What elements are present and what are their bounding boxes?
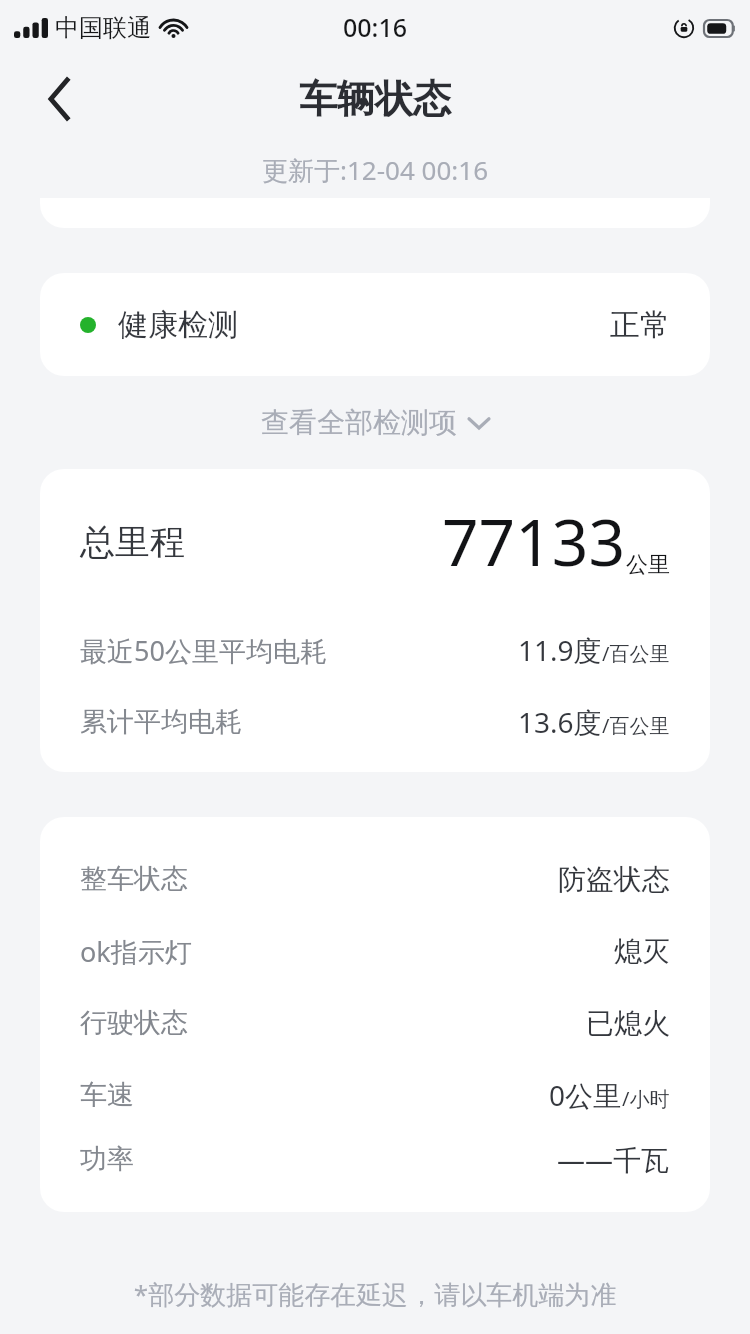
staticText: 总里程 [80,520,185,564]
staticText: 累计平均电耗 [80,705,242,739]
staticText: 行驶状态 [80,1006,188,1040]
button[interactable]: 最近50公里平均电耗 [40,614,710,686]
button[interactable]: 查看全部检测项 [0,376,750,469]
staticText: 11.9度 [518,631,602,669]
staticText: 已熄火 [586,1006,670,1041]
staticText: 功率 [80,1142,134,1176]
staticText: /百公里 [602,640,670,667]
button[interactable]: ok指示灯 [40,915,710,987]
staticText: 13.6度 [518,703,602,741]
staticText: /小时 [622,1085,670,1112]
button[interactable]: 整车状态 [40,843,710,915]
staticText: 防盗状态 [558,862,670,897]
button[interactable]: 健康检测 [40,273,710,376]
button[interactable]: 行驶状态 [40,987,710,1059]
staticText: 中国联通 [55,13,151,43]
staticText: 公里 [626,551,670,579]
staticText: 整车状态 [80,862,188,896]
staticText: 0公里 [549,1076,622,1114]
staticText: 熄灭 [614,934,670,969]
staticText: /百公里 [602,712,670,739]
staticText: 查看全部检测项 [261,405,457,440]
staticText: ok指示灯 [80,933,192,970]
button[interactable]: 总里程 [40,469,710,614]
staticText: *部分数据可能存在延迟，请以车机端为准 [0,1276,750,1312]
staticText: 正常 [610,306,670,344]
staticText: 77133 [442,498,626,585]
staticText: ――千瓦 [557,1140,670,1178]
staticText: 00:16 [343,10,408,44]
button[interactable]: 累计平均电耗 [40,686,710,758]
staticText: 车辆状态 [299,75,451,123]
button[interactable]: 功率 [40,1131,710,1186]
staticText: 健康检测 [118,306,238,344]
button[interactable]: Back [32,71,88,127]
staticText: 最近50公里平均电耗 [80,632,327,669]
staticText: 车速 [80,1078,134,1112]
button[interactable]: 车速 [40,1059,710,1131]
staticText: 更新于:12-04 00:16 [262,152,489,188]
